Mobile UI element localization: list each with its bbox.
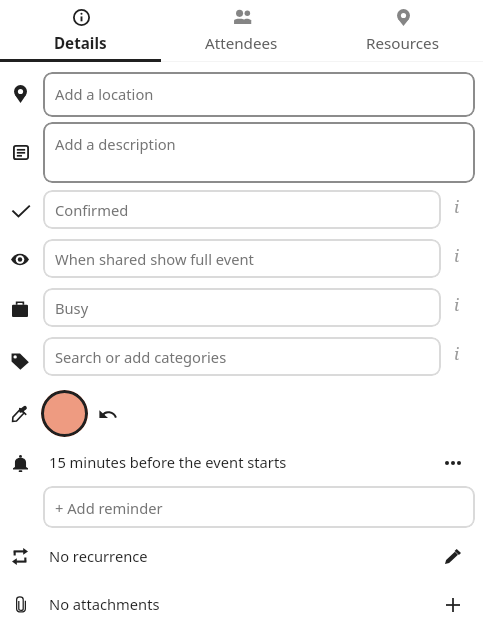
button[interactable]: Resources: [322, 0, 483, 62]
button[interactable]: Busy: [43, 288, 441, 327]
staticText: i: [454, 244, 460, 267]
button[interactable]: Reminder options: [438, 448, 468, 478]
staticText: Add a description: [55, 134, 176, 154]
staticText: Resources: [366, 33, 439, 54]
button[interactable]: Add attachment: [438, 590, 468, 620]
button[interactable]: More information: [440, 293, 478, 329]
staticText: When shared show full event: [55, 249, 254, 269]
button[interactable]: Search or add categories: [43, 337, 441, 376]
staticText: Details: [54, 33, 107, 54]
staticText: i: [454, 195, 460, 218]
button[interactable]: More information: [440, 195, 478, 231]
staticText: Search or add categories: [55, 347, 227, 367]
button[interactable]: Confirmed: [43, 190, 441, 229]
staticText: i: [454, 293, 460, 316]
button[interactable]: Details: [0, 0, 161, 62]
staticText: No attachments: [49, 594, 160, 614]
button[interactable]: More information: [440, 342, 478, 378]
button[interactable]: Add a location: [43, 72, 475, 117]
button[interactable]: + Add reminder: [43, 486, 475, 528]
button[interactable]: Attendees: [161, 0, 322, 62]
staticText: i: [454, 342, 460, 365]
staticText: + Add reminder: [55, 498, 163, 518]
button[interactable]: Edit recurrence: [438, 541, 468, 571]
staticText: No recurrence: [49, 546, 148, 566]
staticText: Busy: [55, 298, 89, 318]
staticText: 15 minutes before the event starts: [49, 452, 287, 472]
button[interactable]: When shared show full event: [43, 239, 441, 278]
button[interactable]: Event colour: [41, 390, 88, 437]
button[interactable]: More information: [440, 244, 478, 280]
staticText: Confirmed: [55, 200, 129, 220]
staticText: Attendees: [205, 33, 278, 54]
button[interactable]: Undo colour: [93, 399, 123, 429]
staticText: Add a location: [55, 84, 154, 104]
button[interactable]: Add a description: [43, 122, 475, 183]
